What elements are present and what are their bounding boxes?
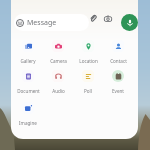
staticText: Imagine	[19, 120, 37, 126]
staticText: Message	[27, 18, 57, 28]
button[interactable]: Document	[13, 68, 43, 94]
staticText: Event	[112, 88, 124, 94]
staticText: Document	[17, 88, 40, 94]
button[interactable]: Location	[73, 38, 103, 64]
staticText: Poll	[84, 88, 92, 94]
staticText: Location	[79, 58, 98, 64]
button[interactable]: Take photo	[101, 12, 114, 25]
button[interactable]: Audio	[43, 68, 73, 94]
staticText: Contact	[110, 58, 127, 64]
button[interactable]: Attach file	[87, 12, 99, 24]
staticText: Gallery	[20, 58, 36, 64]
staticText: Audio	[52, 88, 65, 94]
button[interactable]: Camera	[43, 38, 73, 64]
button[interactable]: Contact	[103, 38, 133, 64]
button[interactable]: Poll	[73, 68, 103, 94]
button[interactable]: Record voice message	[121, 14, 138, 31]
button[interactable]: Message	[14, 14, 89, 31]
button[interactable]: Gallery	[13, 38, 43, 64]
staticText: Camera	[50, 58, 67, 64]
button[interactable]: Event	[103, 68, 133, 94]
button[interactable]: Imagine	[13, 100, 43, 126]
